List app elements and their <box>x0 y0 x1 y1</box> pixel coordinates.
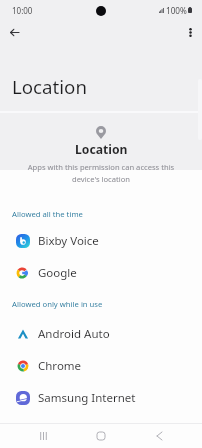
staticText: Location <box>75 141 128 158</box>
button[interactable]: Navigate up <box>2 20 26 44</box>
button[interactable]: Recent apps <box>28 423 58 448</box>
staticText: Bixby Voice <box>38 233 99 249</box>
button[interactable]: Google <box>0 257 202 289</box>
staticText: Chrome <box>38 358 82 374</box>
button[interactable]: More options <box>178 20 202 44</box>
staticText: 10:00 <box>12 5 33 16</box>
button[interactable]: Samsung Internet <box>0 382 202 414</box>
staticText: Apps with this permission can access thi… <box>14 162 188 185</box>
staticText: Location <box>12 74 87 99</box>
button[interactable]: Back <box>144 423 174 448</box>
staticText: Allowed all the time <box>12 209 83 219</box>
staticText: Android Auto <box>38 326 110 342</box>
staticText: Allowed only while in use <box>12 299 103 309</box>
button[interactable]: Bixby Voice <box>0 225 202 257</box>
button[interactable]: Home <box>86 423 116 448</box>
button[interactable]: Android Auto <box>0 318 202 350</box>
staticText: 100% <box>166 5 187 16</box>
staticText: Samsung Internet <box>38 390 136 406</box>
button[interactable]: Chrome <box>0 350 202 382</box>
staticText: Google <box>38 265 77 281</box>
